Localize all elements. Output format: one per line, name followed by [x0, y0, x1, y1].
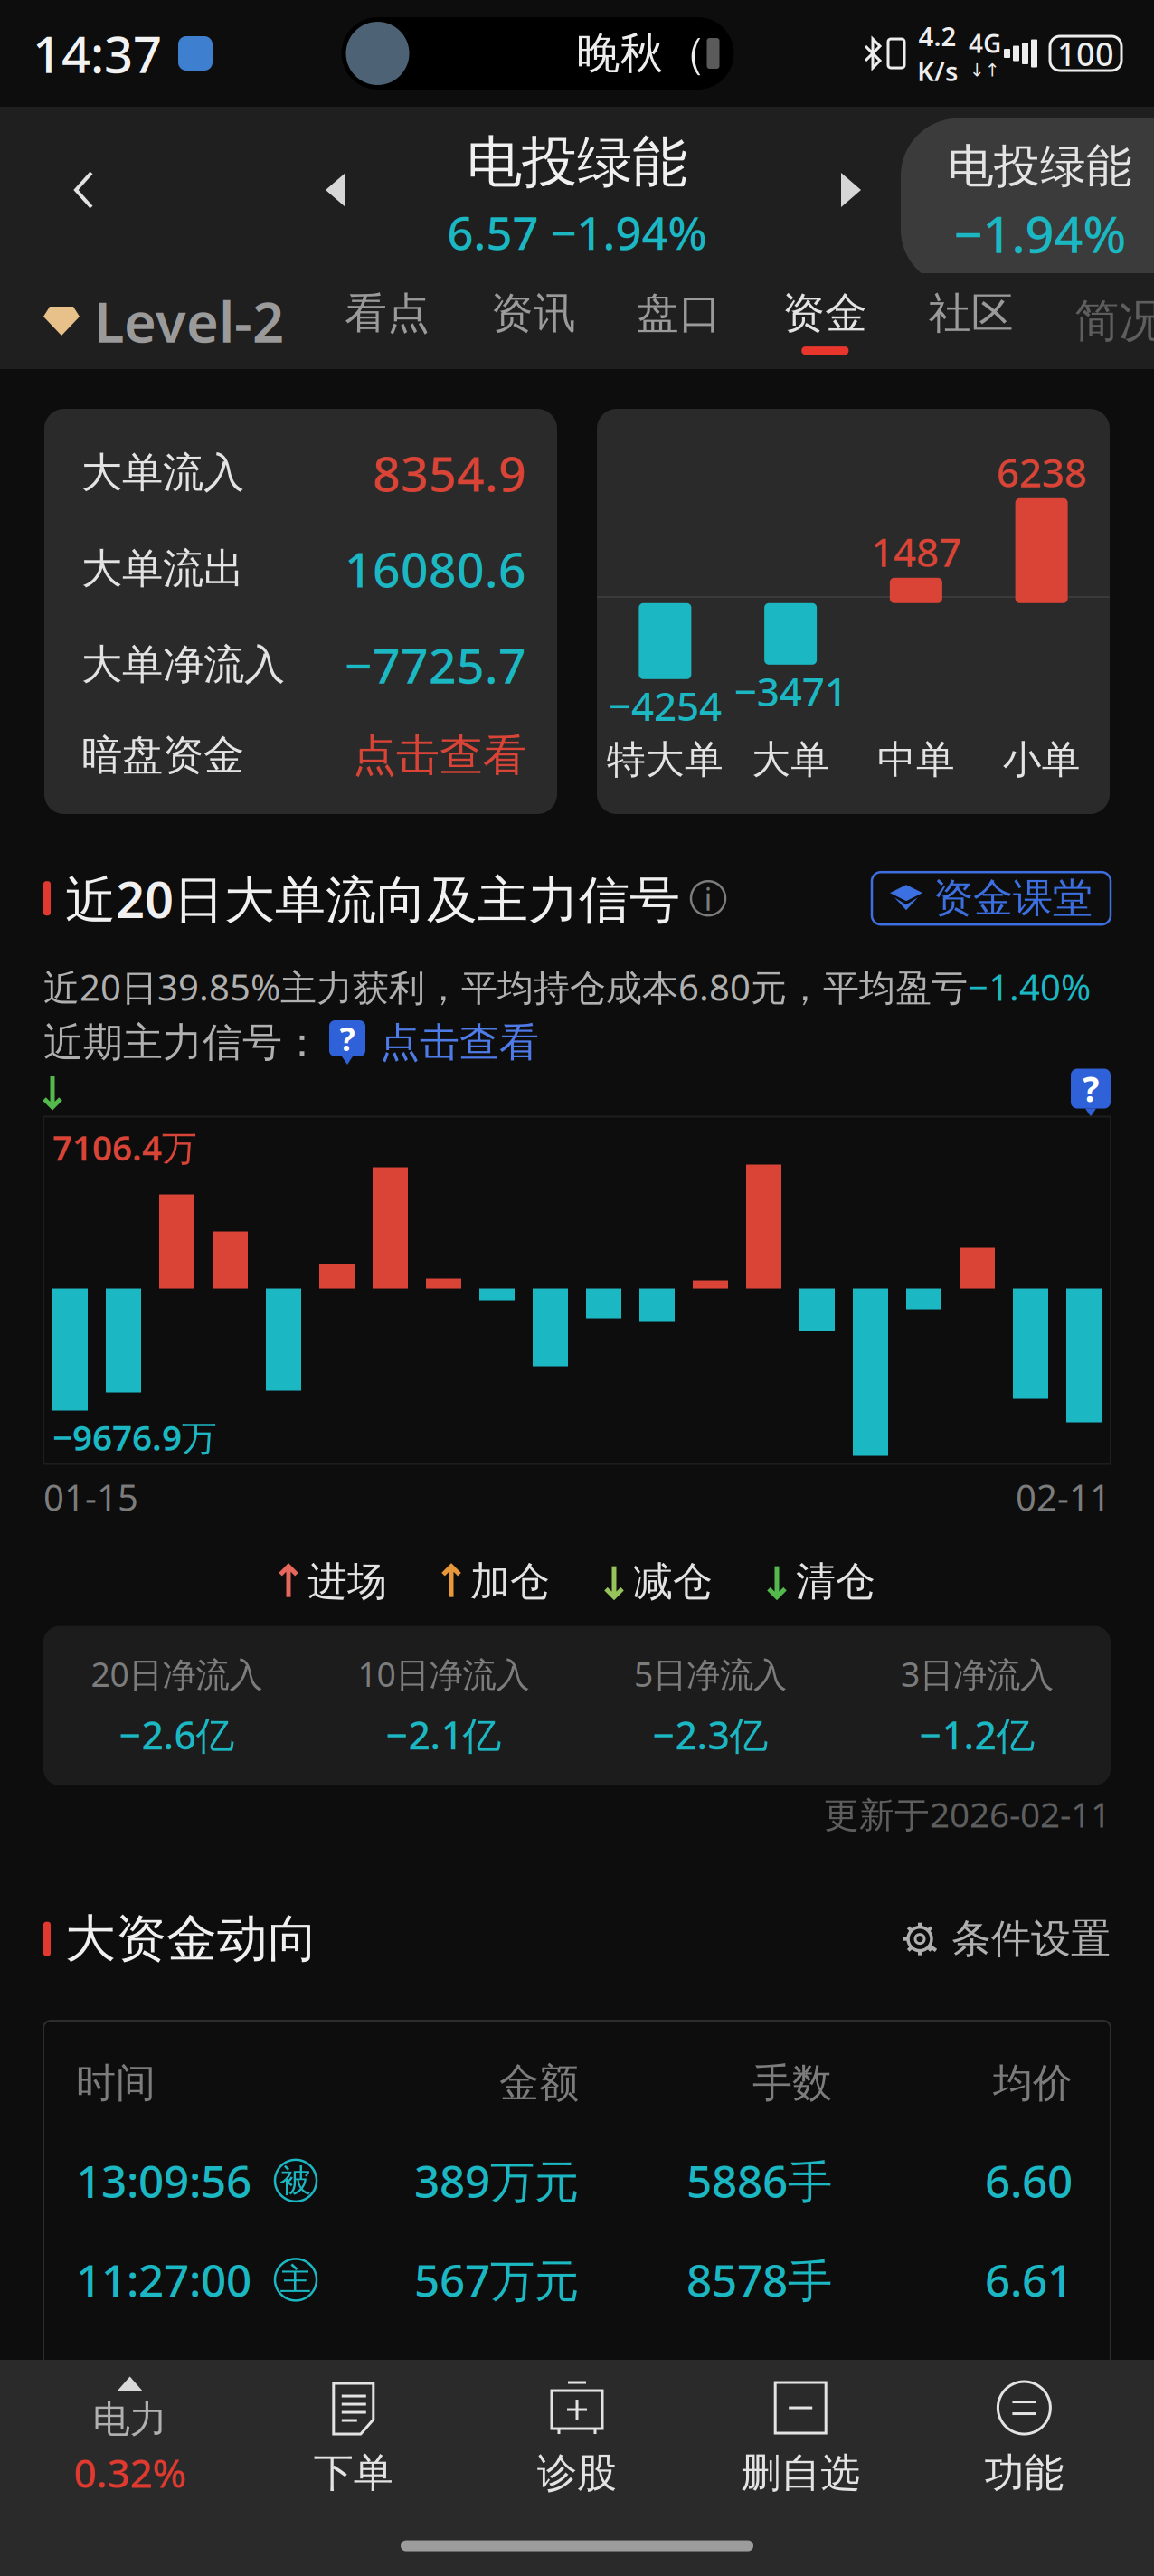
- button[interactable]: 13:09:56: [43, 2151, 1111, 2210]
- staticText: 电力: [93, 2396, 167, 2442]
- staticText: 近期主力信号：: [43, 1018, 322, 1067]
- button[interactable]: Previous stock: [297, 140, 376, 240]
- staticText: 近20日39.85%主力获利，平均持仓成本6.80元，平均盈亏: [43, 963, 968, 1011]
- staticText: 13:09:56: [76, 2151, 251, 2210]
- staticText: 4.2: [918, 18, 956, 53]
- staticText: 均价: [993, 2059, 1073, 2108]
- button[interactable]: 点击查看: [353, 729, 526, 782]
- staticText: 10日净流入: [358, 1651, 530, 1696]
- button[interactable]: 盘口: [637, 287, 722, 355]
- button[interactable]: 资金: [783, 287, 868, 355]
- staticText: Level-2: [94, 284, 284, 358]
- staticText: 点击查看: [353, 729, 526, 782]
- staticText: −2.1亿: [386, 1709, 501, 1760]
- staticText: −9676.9万: [52, 1414, 217, 1460]
- staticText: 社区: [929, 287, 1014, 339]
- staticText: 被: [280, 2161, 312, 2200]
- staticText: 中单: [877, 736, 955, 783]
- staticText: −2.3亿: [653, 1709, 768, 1760]
- staticText: 5日净流入: [634, 1651, 787, 1696]
- staticText: 01-15: [43, 1473, 138, 1521]
- staticText: 金额: [499, 2059, 579, 2108]
- staticText: 6.57 −1.94%: [447, 202, 707, 263]
- button[interactable]: 资金课堂: [872, 872, 1111, 925]
- staticText: 手数: [752, 2059, 832, 2108]
- button[interactable]: Level-2: [43, 284, 284, 358]
- staticText: ?: [1083, 1065, 1099, 1112]
- button[interactable]: 下单: [242, 2378, 465, 2497]
- staticText: 16080.6: [345, 537, 526, 601]
- staticText: 减仓: [633, 1557, 713, 1606]
- staticText: 大单: [752, 736, 829, 783]
- button[interactable]: 看点: [345, 287, 430, 355]
- button[interactable]: 社区: [929, 287, 1014, 355]
- staticText: 0.32%: [74, 2446, 186, 2499]
- staticText: 晚秋（: [577, 27, 707, 80]
- button[interactable]: 删自选: [689, 2378, 912, 2497]
- staticText: −3471: [734, 665, 847, 717]
- staticText: 诊股: [537, 2448, 617, 2497]
- staticText: 条件设置: [951, 1914, 1111, 1963]
- staticText: 资金课堂: [933, 874, 1093, 923]
- staticText: 暗盘资金: [81, 730, 244, 781]
- staticText: 100: [1057, 32, 1114, 75]
- staticText: 大单流入: [81, 448, 244, 498]
- staticText: 进场: [307, 1557, 387, 1606]
- staticText: −4254: [609, 679, 722, 732]
- button[interactable]: 诊股: [465, 2378, 689, 2497]
- staticText: 小单: [1003, 736, 1080, 783]
- button[interactable]: 资讯: [491, 287, 576, 355]
- button[interactable]: Next stock: [810, 140, 890, 240]
- staticText: −1.2亿: [919, 1709, 1035, 1760]
- staticText: −1.94%: [954, 200, 1126, 267]
- staticText: 时间: [76, 2059, 156, 2108]
- staticText: 5886手: [686, 2151, 832, 2210]
- staticText: −7725.7: [345, 633, 526, 697]
- staticText: 盘口: [637, 287, 722, 339]
- staticText: 近20日大单流向及主力信号: [65, 865, 680, 932]
- staticText: 8354.9: [373, 441, 526, 505]
- staticText: 389万元: [414, 2151, 579, 2210]
- button[interactable]: 条件设置: [901, 1914, 1111, 1963]
- staticText: 3日净流入: [901, 1651, 1054, 1696]
- staticText: 更新于2026-02-11: [824, 1791, 1111, 1837]
- staticText: 1487: [871, 525, 961, 578]
- staticText: 大资金动向: [65, 1908, 318, 1970]
- button[interactable]: 功能: [912, 2378, 1136, 2497]
- staticText: −2.6亿: [119, 1709, 235, 1760]
- staticText: 加仓: [470, 1557, 550, 1606]
- staticText: 清仓: [796, 1557, 875, 1606]
- staticText: 特大单: [607, 736, 723, 783]
- button[interactable]: 电力: [18, 2377, 242, 2499]
- button[interactable]: Help: [1071, 1069, 1111, 1117]
- button[interactable]: Info: [680, 877, 736, 920]
- staticText: 7106.4万: [52, 1124, 197, 1170]
- button[interactable]: ?: [322, 1018, 539, 1067]
- staticText: 主: [280, 2260, 312, 2299]
- button[interactable]: 11:27:00: [43, 2250, 1111, 2309]
- staticText: K/s: [917, 53, 958, 89]
- staticText: 11:27:00: [76, 2250, 251, 2309]
- staticText: 下单: [314, 2448, 393, 2497]
- staticText: 02-11: [1016, 1473, 1111, 1521]
- staticText: ↓↑: [970, 60, 1000, 80]
- staticText: 资讯: [491, 287, 576, 339]
- staticText: 看点: [345, 287, 430, 339]
- button[interactable]: Back: [34, 140, 134, 240]
- staticText: 14:37: [33, 20, 162, 87]
- staticText: ?: [340, 1017, 355, 1060]
- button[interactable]: 电投绿能: [901, 118, 1154, 287]
- staticText: 大单流出: [81, 544, 244, 594]
- staticText: 20日净流入: [91, 1651, 263, 1696]
- staticText: 567万元: [414, 2250, 579, 2309]
- staticText: 6238: [996, 445, 1087, 498]
- staticText: 大单净流入: [81, 640, 285, 690]
- staticText: 电投绿能: [948, 138, 1132, 194]
- staticText: 简况: [1074, 294, 1154, 349]
- staticText: i: [704, 878, 712, 919]
- staticText: 功能: [984, 2448, 1064, 2497]
- staticText: 电投绿能: [467, 128, 687, 196]
- staticText: 删自选: [741, 2448, 860, 2497]
- staticText: 6.60: [985, 2151, 1073, 2210]
- staticText: −1.40%: [968, 963, 1091, 1011]
